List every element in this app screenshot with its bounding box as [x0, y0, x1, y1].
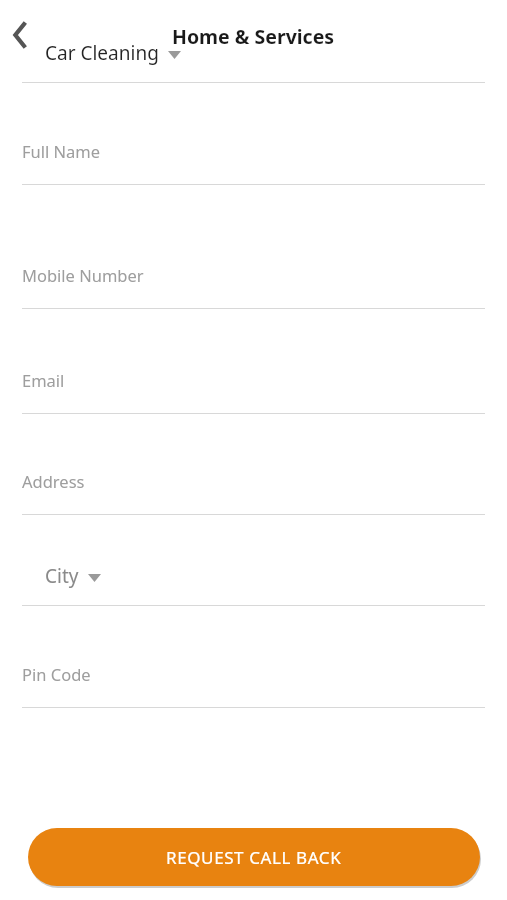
- staticText: REQUEST CALL BACK: [166, 846, 342, 869]
- button[interactable]: Mobile Number: [22, 264, 485, 286]
- button[interactable]: Car Cleaning: [22, 40, 485, 66]
- button[interactable]: REQUEST CALL BACK: [28, 828, 480, 886]
- button[interactable]: Full Name: [22, 140, 485, 162]
- staticText: City: [45, 563, 79, 589]
- button[interactable]: Back: [4, 20, 34, 50]
- button[interactable]: Pin Code: [22, 663, 485, 685]
- button[interactable]: Email: [22, 369, 485, 391]
- button[interactable]: Address: [22, 470, 485, 492]
- button[interactable]: City: [22, 563, 485, 589]
- staticText: Car Cleaning: [45, 40, 159, 66]
- staticText: Home & Services: [172, 23, 335, 50]
